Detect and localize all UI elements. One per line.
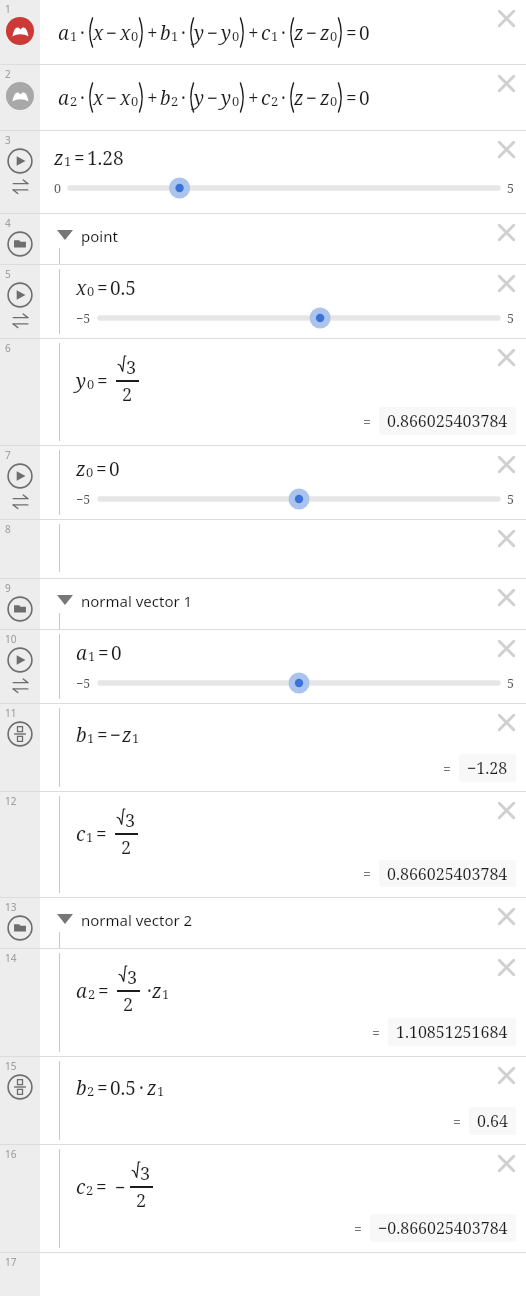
button[interactable]: normal vector 1	[40, 579, 526, 629]
staticText: x	[93, 20, 104, 46]
staticText: x	[76, 275, 87, 301]
button[interactable]: Play animation	[6, 147, 34, 175]
button[interactable]: c	[40, 792, 526, 897]
staticText: −	[207, 85, 219, 111]
staticText: 0	[109, 456, 120, 482]
staticText: =	[96, 1174, 107, 1200]
staticText: −	[306, 85, 318, 111]
button[interactable]: a	[40, 65, 526, 130]
button[interactable]: Dependent object	[6, 720, 34, 748]
button[interactable]: c	[40, 1145, 526, 1252]
staticText: 0.866025403784	[387, 410, 508, 432]
button[interactable]: Play animation	[6, 462, 34, 490]
staticText: z	[147, 1075, 157, 1101]
staticText: 5	[507, 310, 514, 327]
staticText: 7	[5, 448, 11, 462]
button[interactable]: Toggle slider	[9, 490, 31, 512]
staticText: 0	[359, 20, 370, 46]
staticText: z	[294, 85, 304, 111]
button[interactable]: Dependent object	[6, 1073, 34, 1101]
staticText: 6	[5, 341, 11, 355]
staticText: =	[97, 1075, 108, 1101]
button[interactable]: normal vector 2	[40, 898, 526, 948]
staticText: 1	[271, 27, 279, 45]
button[interactable]: Play animation	[6, 646, 34, 674]
staticText: 0.5	[110, 275, 136, 301]
button[interactable]: Toggle visibility	[6, 17, 34, 45]
button[interactable]: b	[40, 704, 526, 791]
button[interactable]: z	[40, 131, 526, 213]
button[interactable]: a	[40, 949, 526, 1056]
staticText: −5	[76, 310, 91, 327]
staticText: c	[261, 20, 271, 46]
staticText: y	[194, 20, 205, 46]
staticText: 0.64	[477, 1110, 508, 1132]
staticText: =	[96, 456, 107, 482]
button[interactable]: point	[40, 214, 526, 264]
staticText: −	[115, 1175, 126, 1200]
staticText: =	[97, 722, 108, 748]
staticText: =	[346, 85, 357, 111]
staticText: 3	[126, 355, 137, 380]
button[interactable]: Delete row	[489, 66, 523, 100]
button[interactable]: Delete row	[489, 580, 523, 614]
button[interactable]: Group	[6, 230, 34, 258]
button[interactable]: Delete row	[489, 340, 523, 374]
button[interactable]: Group	[6, 595, 34, 623]
staticText: x	[93, 85, 104, 111]
button[interactable]: Delete row	[489, 950, 523, 984]
button[interactable]: Delete row	[489, 899, 523, 933]
staticText: z	[294, 20, 304, 46]
button[interactable]: Delete row	[489, 447, 523, 481]
button[interactable]: Delete row	[489, 132, 523, 166]
staticText: −0.866025403784	[378, 1217, 508, 1239]
staticText: 1.10851251684	[396, 1021, 508, 1043]
button[interactable]: Delete row	[489, 215, 523, 249]
staticText: 11	[5, 706, 17, 720]
staticText: 1	[171, 27, 179, 45]
button[interactable]: z	[40, 446, 526, 519]
staticText: 0	[86, 463, 94, 481]
staticText: 2	[88, 985, 96, 1003]
staticText: 1.28	[87, 145, 124, 171]
button[interactable]: Toggle visibility	[6, 82, 34, 110]
staticText: z	[152, 978, 162, 1004]
button[interactable]: Delete row	[489, 521, 523, 555]
staticText: +	[147, 20, 158, 46]
button[interactable]: a	[40, 630, 526, 703]
staticText: =	[372, 1023, 380, 1042]
staticText: −	[110, 722, 122, 748]
button[interactable]: Delete row	[489, 705, 523, 739]
button[interactable]: y	[40, 339, 526, 445]
button[interactable]: Delete row	[489, 1, 523, 35]
staticText: =	[96, 821, 107, 847]
staticText: 0	[111, 640, 122, 666]
button[interactable]: Delete row	[489, 793, 523, 827]
staticText: 1	[88, 647, 96, 665]
staticText: =	[363, 412, 371, 431]
staticText: point	[81, 226, 118, 246]
button[interactable]: b	[40, 1057, 526, 1144]
button[interactable]	[40, 520, 526, 578]
button[interactable]: Delete row	[489, 1146, 523, 1180]
button[interactable]: Delete row	[489, 1058, 523, 1092]
button[interactable]: Toggle slider	[9, 175, 31, 197]
button[interactable]: x	[40, 265, 526, 338]
button[interactable]: Toggle slider	[9, 674, 31, 696]
staticText: −5	[76, 491, 91, 508]
button[interactable]: Delete row	[489, 266, 523, 300]
staticText: 1	[5, 2, 11, 16]
staticText: z	[320, 85, 330, 111]
button[interactable]: Group	[6, 914, 34, 942]
button[interactable]: a	[40, 0, 526, 64]
button[interactable]: Toggle slider	[9, 309, 31, 331]
staticText: c	[76, 1174, 86, 1200]
staticText: −5	[76, 675, 91, 692]
staticText: ·	[147, 978, 152, 1004]
button[interactable]: Play animation	[6, 281, 34, 309]
staticText: 13	[5, 900, 17, 914]
staticText: 5	[507, 675, 514, 692]
button[interactable]: Delete row	[489, 631, 523, 665]
staticText: a	[76, 640, 88, 666]
